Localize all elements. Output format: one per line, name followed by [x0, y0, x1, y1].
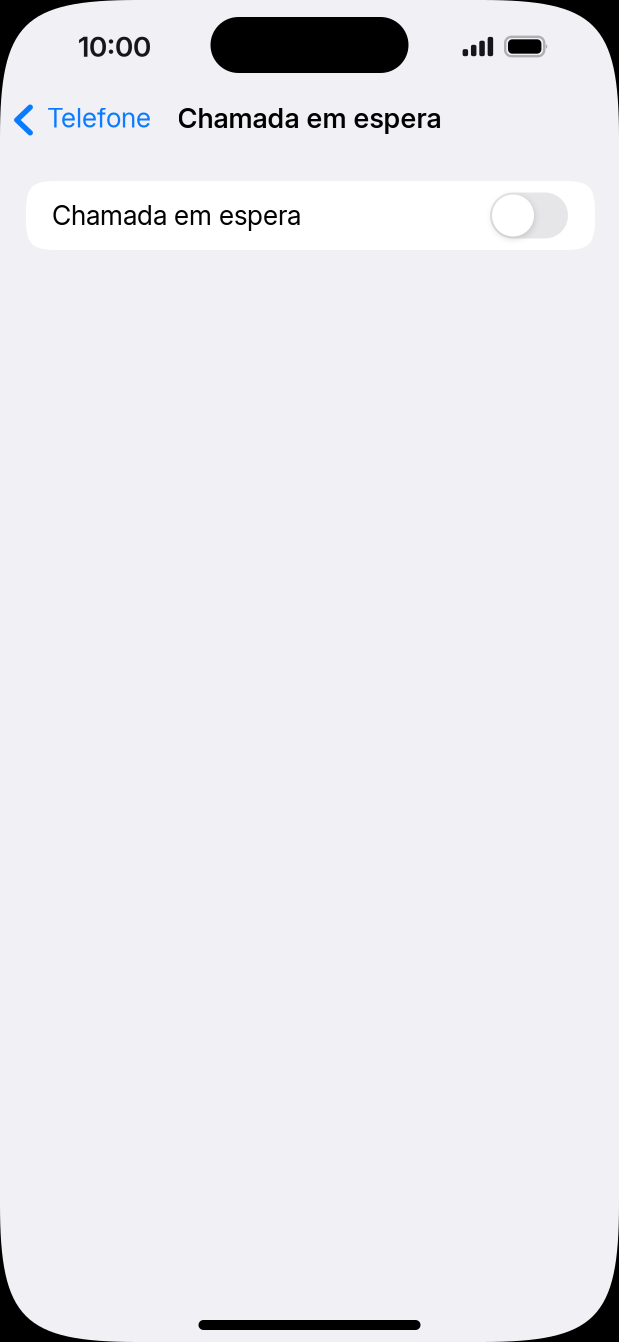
button[interactable]: Telefone [0, 90, 163, 146]
staticText: 10:00 [78, 30, 151, 63]
staticText: Chamada em espera [177, 101, 441, 134]
staticText: Chamada em espera [52, 199, 301, 231]
staticText: Telefone [47, 102, 151, 134]
button[interactable]: Chamada em espera [26, 181, 595, 250]
button[interactable]: Chamada em espera [490, 192, 568, 238]
